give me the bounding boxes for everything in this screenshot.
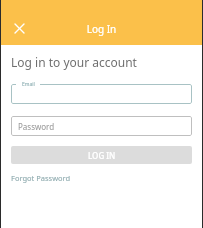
staticText: LOG IN bbox=[88, 150, 116, 161]
staticText: Email bbox=[22, 81, 35, 88]
staticText: Log In bbox=[1, 22, 202, 36]
button[interactable]: Close bbox=[9, 18, 29, 38]
button[interactable]: Password bbox=[11, 116, 192, 136]
staticText: Forgot Password bbox=[11, 173, 71, 183]
button[interactable] bbox=[11, 84, 192, 104]
button[interactable]: Forgot Password bbox=[11, 173, 71, 183]
staticText: Password bbox=[18, 121, 55, 132]
staticText: Log in to your account bbox=[11, 54, 137, 70]
button[interactable]: LOG IN bbox=[11, 146, 192, 164]
